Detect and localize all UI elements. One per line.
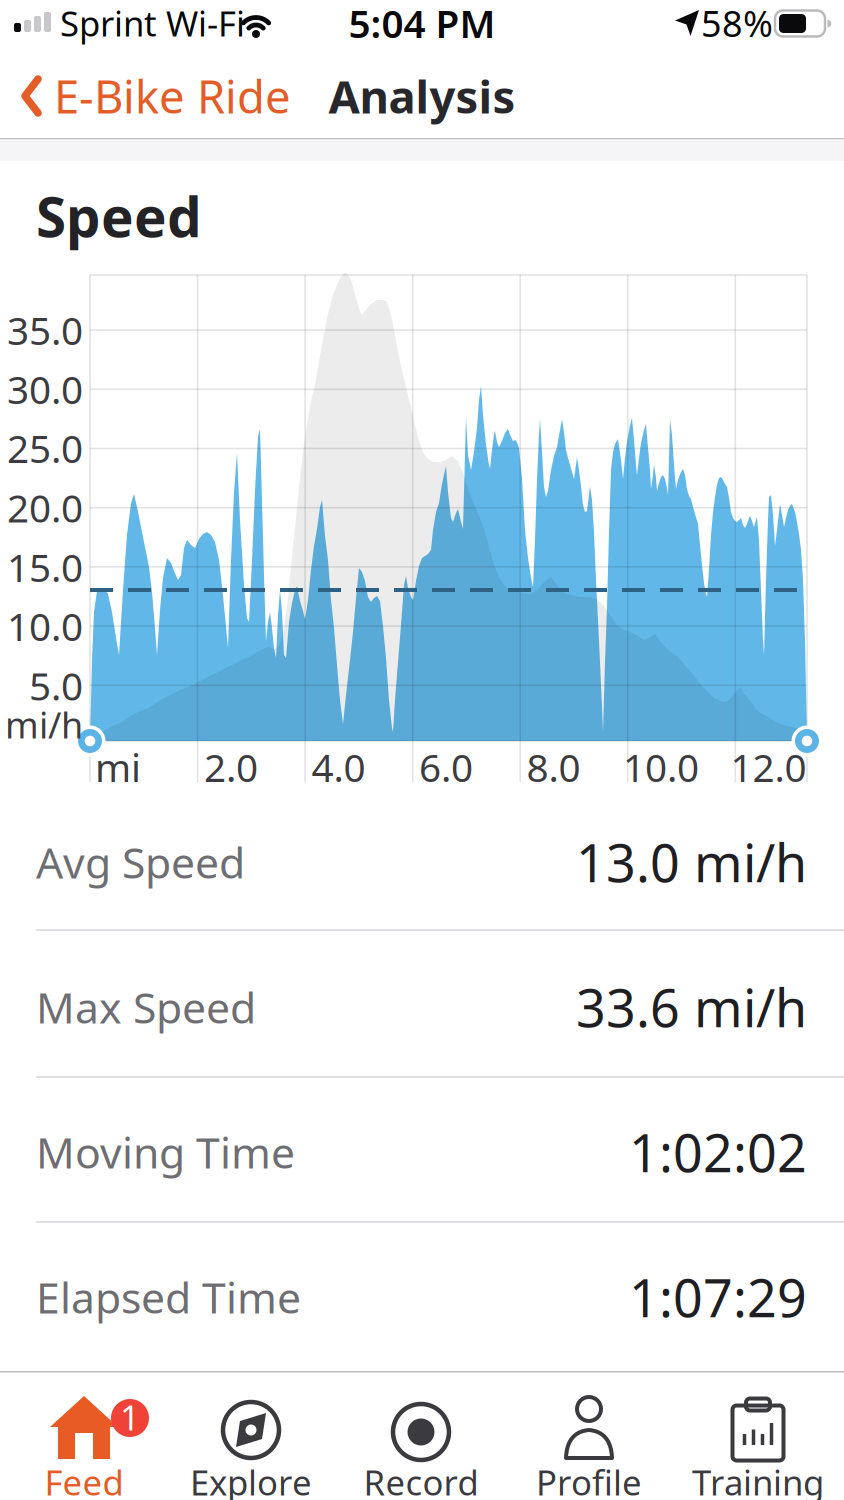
staticText: Analysis (328, 66, 515, 126)
staticText: 20.0 (7, 482, 83, 533)
staticText: 6.0 (419, 741, 473, 793)
staticText: 35.0 (7, 304, 83, 356)
staticText: 30.0 (7, 363, 83, 415)
button[interactable]: 1 (0, 0, 168, 128)
staticText: 12.0 (730, 741, 806, 793)
staticText: Record (363, 1459, 478, 1500)
staticText: Speed (36, 180, 202, 252)
button[interactable]: Record (0, 0, 168, 128)
staticText: 5.0 (29, 660, 83, 711)
staticText: 33.6 mi/h (576, 972, 807, 1042)
staticText: mi (95, 741, 141, 793)
button[interactable]: Back (20, 66, 420, 126)
staticText: Feed (44, 1459, 123, 1500)
staticText: Elapsed Time (36, 1269, 301, 1325)
staticText: 10.0 (7, 600, 83, 652)
staticText: Moving Time (36, 1124, 295, 1180)
staticText: 1:02:02 (629, 1117, 807, 1187)
staticText: 58% (701, 0, 773, 47)
staticText: 8.0 (526, 741, 580, 793)
staticText: Avg Speed (36, 834, 245, 890)
staticText: 1 (120, 1394, 140, 1440)
staticText: 2.0 (204, 741, 258, 793)
staticText: 13.0 mi/h (576, 827, 807, 897)
staticText: Profile (536, 1459, 642, 1500)
staticText: mi/h (5, 701, 83, 748)
staticText: 1:07:29 (629, 1262, 807, 1332)
staticText: E-Bike Ride (54, 66, 291, 126)
button[interactable]: Explore (0, 0, 168, 128)
staticText: 10.0 (623, 741, 699, 793)
staticText: Max Speed (36, 979, 256, 1035)
button[interactable]: Training (0, 0, 168, 128)
staticText: 4.0 (311, 741, 365, 793)
staticText: Explore (190, 1459, 312, 1500)
staticText: Sprint Wi-Fi (60, 0, 245, 46)
staticText: 15.0 (7, 541, 83, 593)
staticText: Training (692, 1459, 824, 1500)
staticText: 25.0 (7, 422, 83, 474)
button[interactable]: Profile (0, 0, 168, 128)
staticText: 5:04 PM (348, 0, 495, 49)
